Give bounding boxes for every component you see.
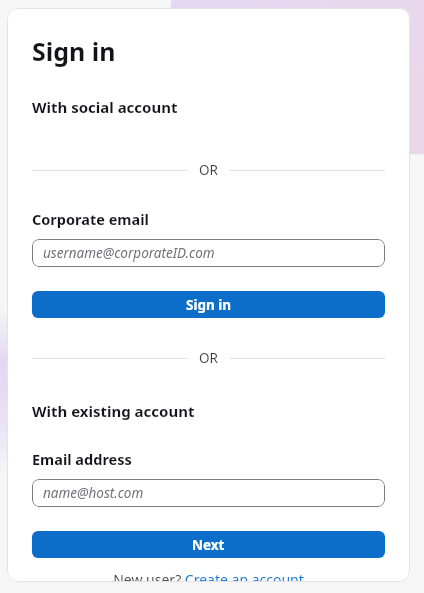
staticText: username@corporateID.com bbox=[43, 244, 215, 262]
staticText: Next bbox=[192, 536, 225, 554]
staticText: Sign in bbox=[32, 34, 116, 68]
staticText: Sign in bbox=[186, 296, 232, 314]
staticText: OR bbox=[199, 161, 218, 179]
button[interactable]: Sign in bbox=[32, 291, 385, 318]
staticText: With existing account bbox=[32, 401, 195, 421]
staticText: Email address bbox=[32, 449, 132, 469]
button[interactable]: Next bbox=[32, 531, 385, 558]
staticText: With social account bbox=[32, 97, 178, 117]
button[interactable]: username@corporateID.com bbox=[32, 239, 385, 267]
button[interactable]: name@host.com bbox=[32, 479, 385, 507]
staticText: Corporate email bbox=[32, 209, 149, 229]
button[interactable]: New user? Create an account bbox=[113, 570, 304, 582]
staticText: OR bbox=[199, 349, 218, 367]
staticText: name@host.com bbox=[43, 484, 144, 502]
